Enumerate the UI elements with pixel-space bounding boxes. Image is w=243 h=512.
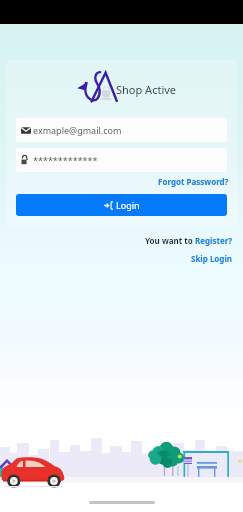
button[interactable]: Register? bbox=[195, 235, 233, 246]
staticText: Forgot Password? bbox=[158, 176, 229, 187]
staticText: Skip Login bbox=[191, 253, 233, 264]
staticText: exmaple@gmail.com bbox=[33, 124, 122, 136]
staticText: Login bbox=[116, 199, 140, 211]
staticText: You want to bbox=[145, 235, 195, 246]
button[interactable]: Login bbox=[16, 194, 227, 216]
button[interactable]: Skip Login bbox=[191, 253, 233, 264]
staticText: ************* bbox=[33, 154, 98, 166]
staticText: Register? bbox=[195, 235, 233, 246]
button[interactable]: Forgot Password? bbox=[140, 175, 229, 187]
button[interactable]: Email bbox=[16, 118, 227, 142]
staticText: Shop Active bbox=[116, 82, 177, 97]
button[interactable]: Password bbox=[16, 148, 227, 172]
